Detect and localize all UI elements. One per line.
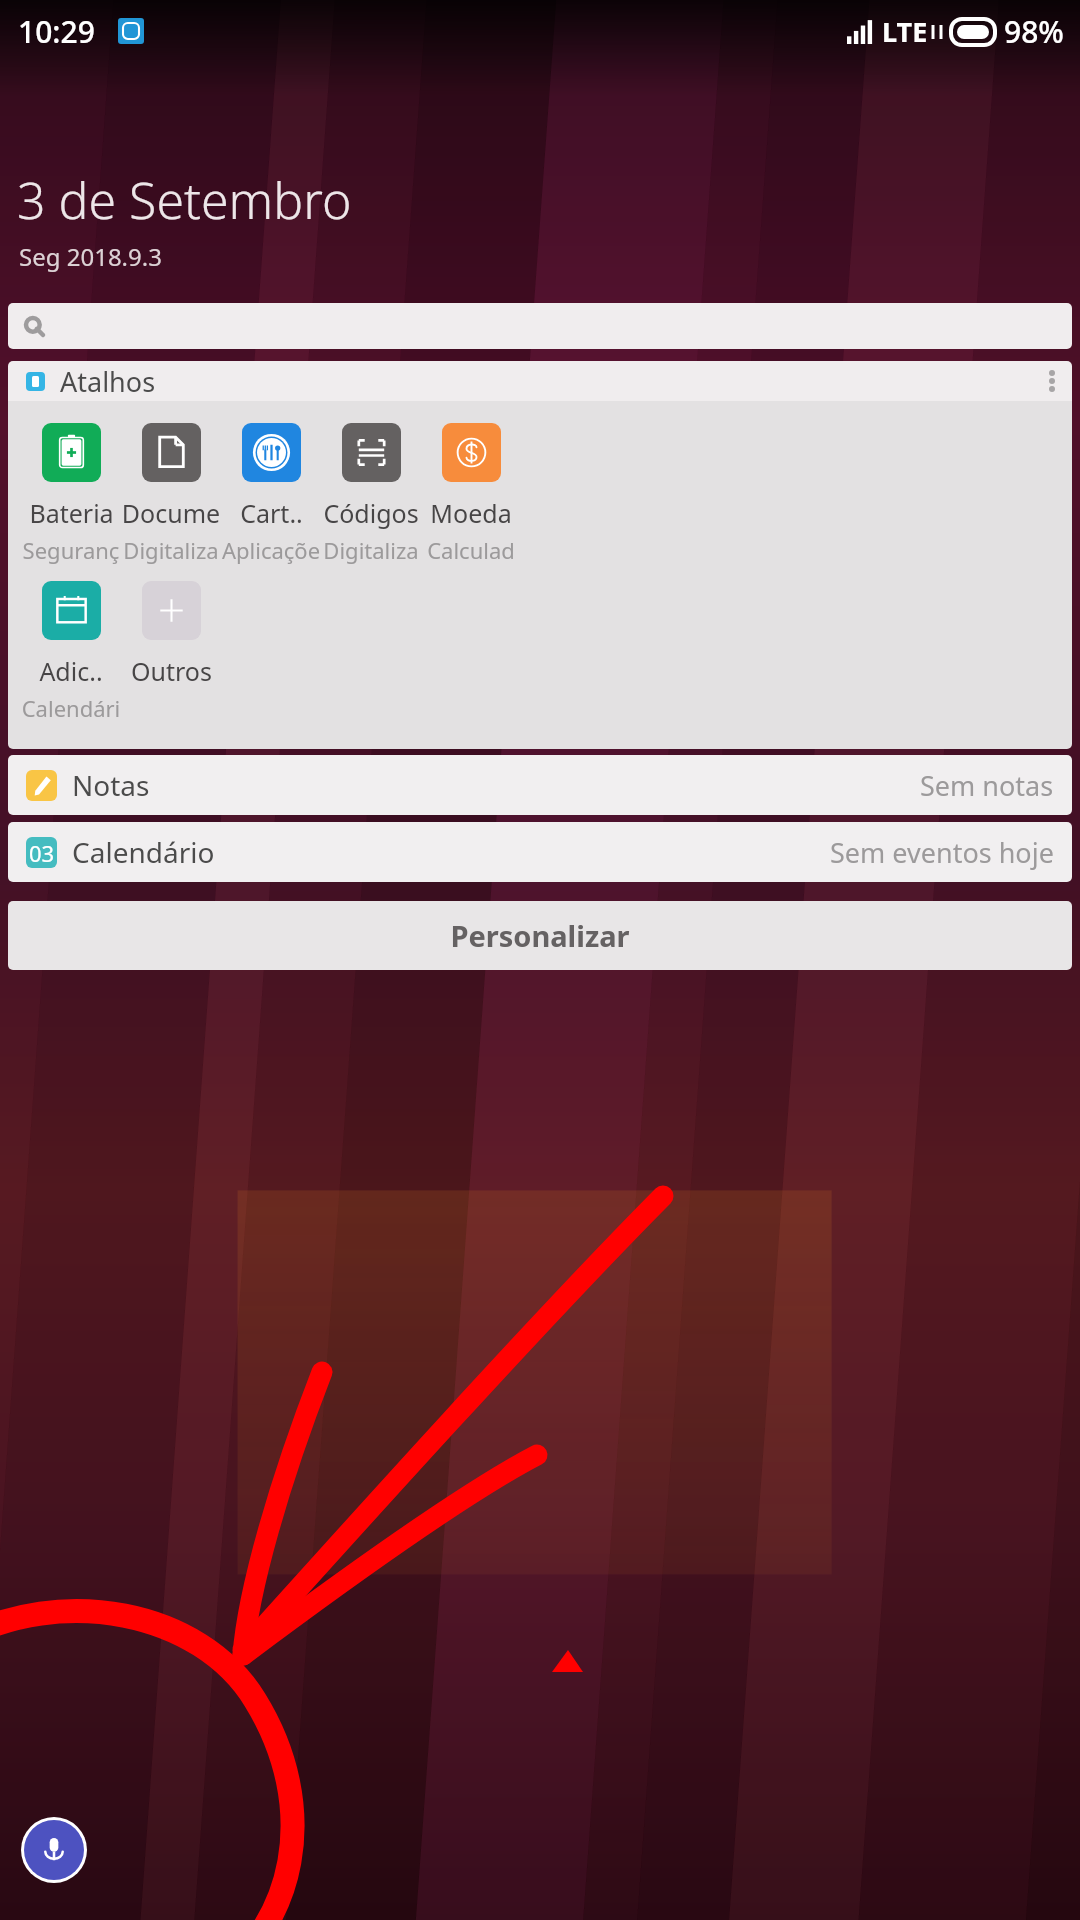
button[interactable]: Bateria [21, 423, 121, 565]
staticText: 3 de Setembro [17, 166, 352, 234]
staticText: Digitalizador [121, 535, 221, 565]
button[interactable]: Moeda [421, 423, 521, 565]
button[interactable]: Atalhos [8, 361, 1072, 401]
button[interactable]: 03 [8, 822, 1072, 882]
button[interactable] [8, 303, 1072, 349]
button[interactable]: Códigos QR [321, 423, 421, 565]
staticText: Sem eventos hoje [830, 834, 1054, 871]
button[interactable]: Documentos [121, 423, 221, 565]
button[interactable]: Cart.. [221, 423, 321, 565]
staticText: Adic.. [39, 654, 103, 688]
staticText: Calculadora [421, 535, 521, 565]
button[interactable]: Assistente de voz [24, 1820, 84, 1880]
staticText: Moeda [430, 496, 512, 530]
staticText: Bateria [29, 496, 114, 530]
staticText: LTE [882, 13, 928, 50]
button[interactable]: Mais opções [1032, 361, 1072, 401]
staticText: 98% [1004, 11, 1064, 52]
staticText: Códigos QR [321, 496, 421, 530]
staticText: Outros [131, 654, 212, 688]
staticText: Notas [72, 766, 150, 804]
staticText: Seg 2018.9.3 [19, 240, 162, 273]
staticText: 03 [29, 838, 55, 868]
staticText: Personalizar [450, 916, 630, 955]
button[interactable]: Outros [121, 581, 221, 688]
button[interactable]: Notas [8, 755, 1072, 815]
button[interactable]: Adic.. [21, 581, 121, 723]
staticText: Digitalizador [321, 535, 421, 565]
staticText: Segurança [21, 535, 121, 565]
staticText: 10:29 [18, 11, 95, 52]
staticText: Sem notas [920, 767, 1054, 804]
staticText: Calendário [21, 693, 121, 723]
staticText: Cart.. [240, 496, 303, 530]
staticText: Documentos [121, 496, 221, 530]
staticText: Calendário [72, 833, 215, 871]
staticText: Aplicações [221, 535, 321, 565]
button[interactable]: Personalizar [8, 901, 1072, 970]
staticText: Atalhos [60, 363, 156, 400]
